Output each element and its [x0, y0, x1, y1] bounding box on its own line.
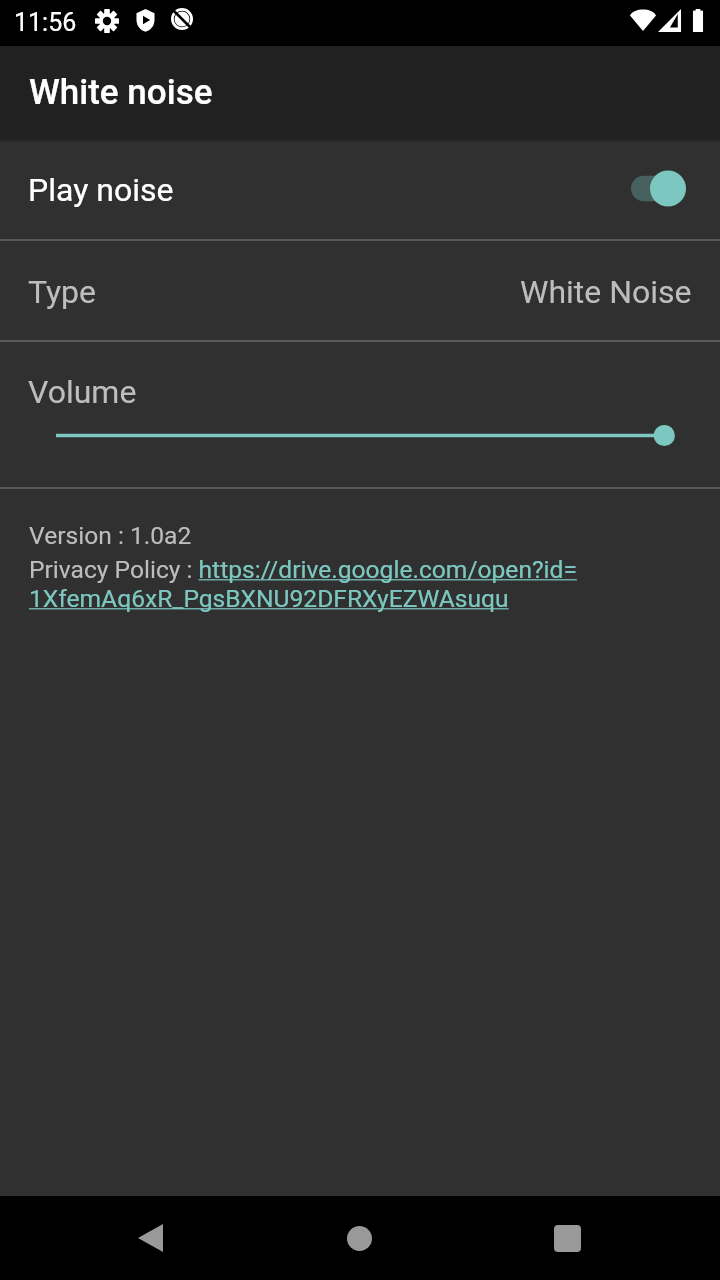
- staticText: White noise: [29, 72, 213, 113]
- button[interactable]: Volume: [0, 342, 720, 487]
- staticText: 11:56: [14, 8, 77, 37]
- button[interactable]: Type: [0, 241, 720, 340]
- staticText: Volume: [28, 373, 137, 411]
- button[interactable]: Privacy Policy : https://drive.google.co…: [29, 555, 577, 613]
- staticText: Version : 1.0a2: [29, 521, 192, 550]
- button[interactable]: Recent apps: [524, 1196, 610, 1280]
- button[interactable]: Play noise: [0, 139, 720, 239]
- staticText: White Noise: [520, 273, 692, 311]
- staticText: Play noise: [28, 171, 174, 209]
- button[interactable]: Home: [316, 1196, 402, 1280]
- button[interactable]: Back: [107, 1196, 193, 1280]
- staticText: Type: [28, 273, 97, 311]
